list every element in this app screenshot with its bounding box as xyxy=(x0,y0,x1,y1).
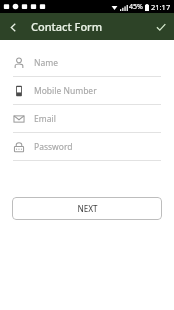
button[interactable]: Name xyxy=(0,49,174,77)
staticText: Name xyxy=(34,57,58,69)
staticText: 21:17 xyxy=(151,2,171,12)
button[interactable]: Back xyxy=(0,14,26,40)
staticText: Password xyxy=(34,141,73,153)
button[interactable]: Mobile Number xyxy=(0,77,174,105)
staticText: Contact Form xyxy=(31,19,103,34)
button[interactable]: Done xyxy=(148,14,174,40)
button[interactable]: Email xyxy=(0,105,174,133)
staticText: NEXT xyxy=(77,203,98,214)
staticText: Email xyxy=(34,113,56,125)
staticText: 45% xyxy=(129,2,143,12)
button[interactable]: NEXT xyxy=(12,197,162,220)
button[interactable]: Password xyxy=(0,133,174,161)
staticText: Mobile Number xyxy=(34,85,97,97)
